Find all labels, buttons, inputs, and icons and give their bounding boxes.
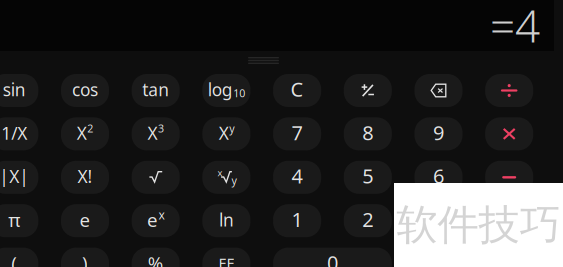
- staticText: EE: [218, 253, 234, 267]
- button[interactable]: C: [273, 74, 321, 107]
- button[interactable]: X3: [132, 117, 180, 150]
- staticText: ln: [219, 208, 234, 231]
- button[interactable]: Divide: [485, 74, 533, 107]
- staticText: x: [158, 207, 164, 223]
- staticText: cos: [72, 78, 98, 101]
- button[interactable]: 1: [273, 204, 321, 237]
- button[interactable]: %: [132, 248, 180, 267]
- staticText: X: [219, 121, 229, 144]
- staticText: 1/X: [1, 121, 27, 144]
- button[interactable]: Xy: [202, 117, 250, 150]
- button[interactable]: 0: [273, 248, 392, 267]
- staticText: 7: [292, 119, 303, 146]
- staticText: X: [77, 121, 87, 144]
- staticText: 5: [362, 162, 373, 189]
- staticText: 10: [233, 86, 245, 100]
- button[interactable]: π: [0, 204, 38, 237]
- staticText: 3: [158, 121, 164, 136]
- button[interactable]: Square root: [132, 161, 180, 194]
- staticText: 软件技巧: [396, 200, 560, 250]
- staticText: 1: [292, 206, 303, 232]
- staticText: ): [82, 251, 88, 267]
- button[interactable]: cos: [61, 74, 109, 107]
- staticText: %: [148, 251, 164, 267]
- staticText: |X|: [0, 165, 29, 188]
- staticText: 4: [292, 162, 303, 189]
- staticText: y: [231, 173, 236, 187]
- button[interactable]: 6: [414, 161, 462, 194]
- staticText: sin: [3, 78, 26, 101]
- button[interactable]: 4: [273, 161, 321, 194]
- staticText: x: [217, 166, 222, 179]
- button[interactable]: 1/X: [0, 117, 38, 150]
- button[interactable]: ex: [132, 204, 180, 237]
- button[interactable]: |X|: [0, 161, 38, 194]
- button[interactable]: log10: [202, 74, 250, 107]
- staticText: X: [147, 121, 157, 144]
- button[interactable]: e: [61, 204, 109, 237]
- staticText: π: [8, 207, 20, 232]
- staticText: tan: [142, 78, 169, 101]
- button[interactable]: EE: [202, 248, 250, 267]
- button[interactable]: 5: [344, 161, 392, 194]
- button[interactable]: (: [0, 248, 38, 267]
- button[interactable]: sin: [0, 74, 38, 107]
- button[interactable]: x root of y: [202, 161, 250, 194]
- staticText: e: [79, 207, 90, 232]
- staticText: C: [291, 76, 304, 102]
- button[interactable]: Delete: [414, 74, 462, 107]
- button[interactable]: tan: [132, 74, 180, 107]
- button[interactable]: 7: [273, 117, 321, 150]
- staticText: 9: [433, 119, 444, 146]
- staticText: 0: [327, 249, 338, 267]
- button[interactable]: ln: [202, 204, 250, 237]
- staticText: 2: [87, 121, 93, 136]
- button[interactable]: Multiply: [485, 117, 533, 150]
- button[interactable]: ): [61, 248, 109, 267]
- staticText: X!: [77, 165, 92, 188]
- staticText: 6: [433, 162, 444, 189]
- staticText: log: [208, 78, 233, 101]
- staticText: 8: [362, 119, 373, 146]
- button[interactable]: 2: [344, 204, 392, 237]
- staticText: =4: [490, 0, 540, 55]
- staticText: (: [11, 251, 17, 267]
- staticText: 3: [433, 206, 444, 232]
- button[interactable]: 9: [414, 117, 462, 150]
- button[interactable]: Minus: [485, 161, 533, 194]
- button[interactable]: X!: [61, 161, 109, 194]
- button[interactable]: Plus: [485, 204, 533, 237]
- button[interactable]: Plus minus: [344, 74, 392, 107]
- button[interactable]: 8: [344, 117, 392, 150]
- staticText: e: [147, 207, 158, 232]
- staticText: y: [229, 121, 234, 136]
- button[interactable]: X2: [61, 117, 109, 150]
- button[interactable]: 3: [414, 204, 462, 237]
- staticText: 2: [362, 206, 373, 232]
